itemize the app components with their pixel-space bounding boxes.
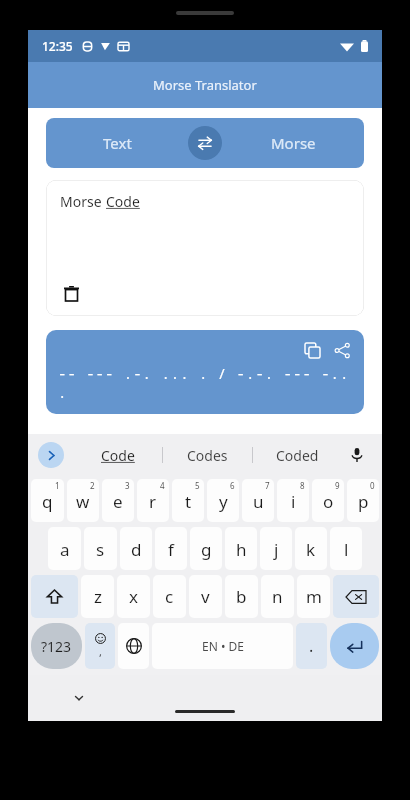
- staticText: o: [323, 490, 334, 513]
- staticText: 0: [370, 480, 375, 491]
- button[interactable]: Emoji: [85, 623, 115, 669]
- button[interactable]: Voice input: [344, 442, 370, 468]
- staticText: Morse: [271, 133, 316, 153]
- button[interactable]: y: [207, 479, 239, 522]
- button[interactable]: j: [260, 527, 292, 570]
- staticText: 5: [195, 480, 200, 491]
- button[interactable]: g: [190, 527, 222, 570]
- button[interactable]: Copy: [300, 338, 324, 362]
- button[interactable]: q: [31, 479, 64, 522]
- button[interactable]: l: [330, 527, 362, 570]
- staticText: k: [306, 538, 316, 561]
- button[interactable]: v: [189, 575, 222, 618]
- button[interactable]: f: [155, 527, 187, 570]
- button[interactable]: t: [172, 479, 204, 522]
- staticText: a: [60, 538, 70, 561]
- button[interactable]: x: [117, 575, 150, 618]
- staticText: 9: [335, 480, 340, 491]
- button[interactable]: EN • DE: [152, 623, 293, 669]
- button[interactable]: w: [67, 479, 99, 522]
- button[interactable]: More suggestions: [38, 442, 64, 468]
- button[interactable]: Coded: [253, 434, 342, 476]
- button[interactable]: Morse: [46, 180, 364, 316]
- staticText: d: [131, 538, 142, 561]
- button[interactable]: Swap translation direction: [188, 126, 222, 160]
- staticText: -- --- .-. ... . / -.-. --- -.. .: [58, 364, 352, 402]
- staticText: s: [96, 538, 105, 561]
- staticText: q: [42, 490, 53, 513]
- button[interactable]: o: [312, 479, 344, 522]
- button[interactable]: .: [296, 623, 327, 669]
- button[interactable]: s: [84, 527, 117, 570]
- staticText: v: [201, 585, 210, 608]
- staticText: ?123: [41, 637, 72, 656]
- staticText: Codes: [187, 446, 228, 465]
- staticText: z: [94, 585, 102, 608]
- staticText: w: [76, 490, 90, 513]
- button[interactable]: Clear text: [58, 280, 84, 306]
- staticText: g: [201, 538, 212, 561]
- button[interactable]: Code: [74, 434, 162, 476]
- button[interactable]: z: [81, 575, 114, 618]
- button[interactable]: h: [225, 527, 257, 570]
- button[interactable]: k: [295, 527, 327, 570]
- staticText: f: [168, 538, 174, 561]
- staticText: Coded: [276, 446, 319, 465]
- staticText: l: [344, 538, 349, 561]
- staticText: Text: [103, 133, 132, 153]
- staticText: c: [165, 585, 174, 608]
- button[interactable]: Codes: [163, 434, 252, 476]
- button[interactable]: c: [153, 575, 186, 618]
- button[interactable]: b: [225, 575, 258, 618]
- staticText: 8: [300, 480, 305, 491]
- staticText: 7: [265, 480, 270, 491]
- staticText: p: [358, 490, 369, 513]
- button[interactable]: n: [261, 575, 294, 618]
- staticText: 1: [55, 480, 60, 491]
- staticText: h: [236, 538, 247, 561]
- staticText: m: [306, 585, 322, 608]
- staticText: u: [253, 490, 264, 513]
- button[interactable]: Text: [46, 118, 188, 168]
- staticText: 4: [160, 480, 165, 491]
- staticText: y: [219, 490, 228, 513]
- staticText: Code: [106, 192, 140, 211]
- staticText: i: [291, 490, 296, 513]
- button[interactable]: d: [120, 527, 152, 570]
- button[interactable]: Morse: [222, 118, 364, 168]
- staticText: b: [236, 585, 247, 608]
- button[interactable]: u: [242, 479, 274, 522]
- button[interactable]: Shift: [31, 575, 78, 618]
- staticText: x: [129, 585, 138, 608]
- staticText: 12:35: [42, 38, 73, 54]
- button[interactable]: Hide keyboard: [68, 687, 90, 709]
- button[interactable]: a: [48, 527, 81, 570]
- button[interactable]: Enter: [330, 623, 379, 669]
- button[interactable]: e: [102, 479, 134, 522]
- staticText: Code: [101, 446, 135, 465]
- staticText: n: [272, 585, 283, 608]
- staticText: t: [185, 490, 192, 513]
- button[interactable]: i: [277, 479, 309, 522]
- button[interactable]: ?123: [31, 623, 82, 669]
- staticText: EN • DE: [202, 638, 244, 654]
- staticText: 6: [230, 480, 235, 491]
- staticText: ,: [99, 644, 102, 659]
- button[interactable]: Share: [330, 338, 354, 362]
- button[interactable]: Backspace: [333, 575, 379, 618]
- button[interactable]: r: [137, 479, 169, 522]
- staticText: 3: [125, 480, 130, 491]
- staticText: Morse Translator: [153, 76, 257, 94]
- staticText: j: [274, 538, 279, 561]
- button[interactable]: m: [297, 575, 330, 618]
- staticText: e: [113, 490, 123, 513]
- staticText: .: [309, 635, 314, 657]
- staticText: Morse: [60, 192, 106, 211]
- button[interactable]: Change language: [118, 623, 149, 669]
- staticText: 2: [90, 480, 95, 491]
- button[interactable]: p: [347, 479, 379, 522]
- staticText: r: [149, 490, 157, 513]
